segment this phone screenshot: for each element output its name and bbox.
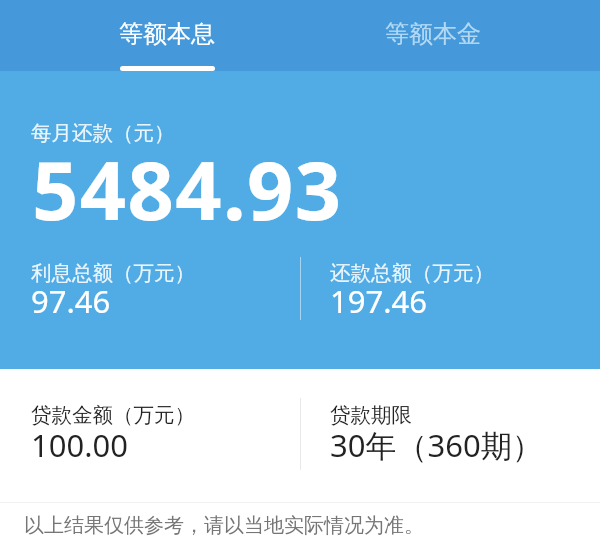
staticText: 197.46 [330,280,427,322]
staticText: 等额本息 [119,19,215,49]
button[interactable]: 等额本金 [300,0,566,71]
staticText: 5484.93 [32,133,343,243]
staticText: 贷款期限 [330,402,412,428]
button[interactable]: 利息总额（万元） [13,246,271,320]
staticText: 以上结果仅供参考，请以当地实际情况为准。 [24,513,424,538]
staticText: 等额本金 [385,19,481,49]
button[interactable]: 贷款金额（万元） [13,388,271,462]
staticText: 还款总额（万元） [330,260,494,286]
staticText: 100.00 [31,424,128,466]
staticText: 贷款金额（万元） [31,402,195,428]
staticText: 每月还款（元） [31,120,175,146]
staticText: 97.46 [31,280,111,322]
staticText: 利息总额（万元） [31,260,195,286]
staticText: 30年（360期） [330,424,543,466]
button[interactable]: 还款总额（万元） [312,246,570,320]
button[interactable]: 等额本息 [34,0,300,71]
button[interactable]: 贷款期限 [312,388,570,462]
